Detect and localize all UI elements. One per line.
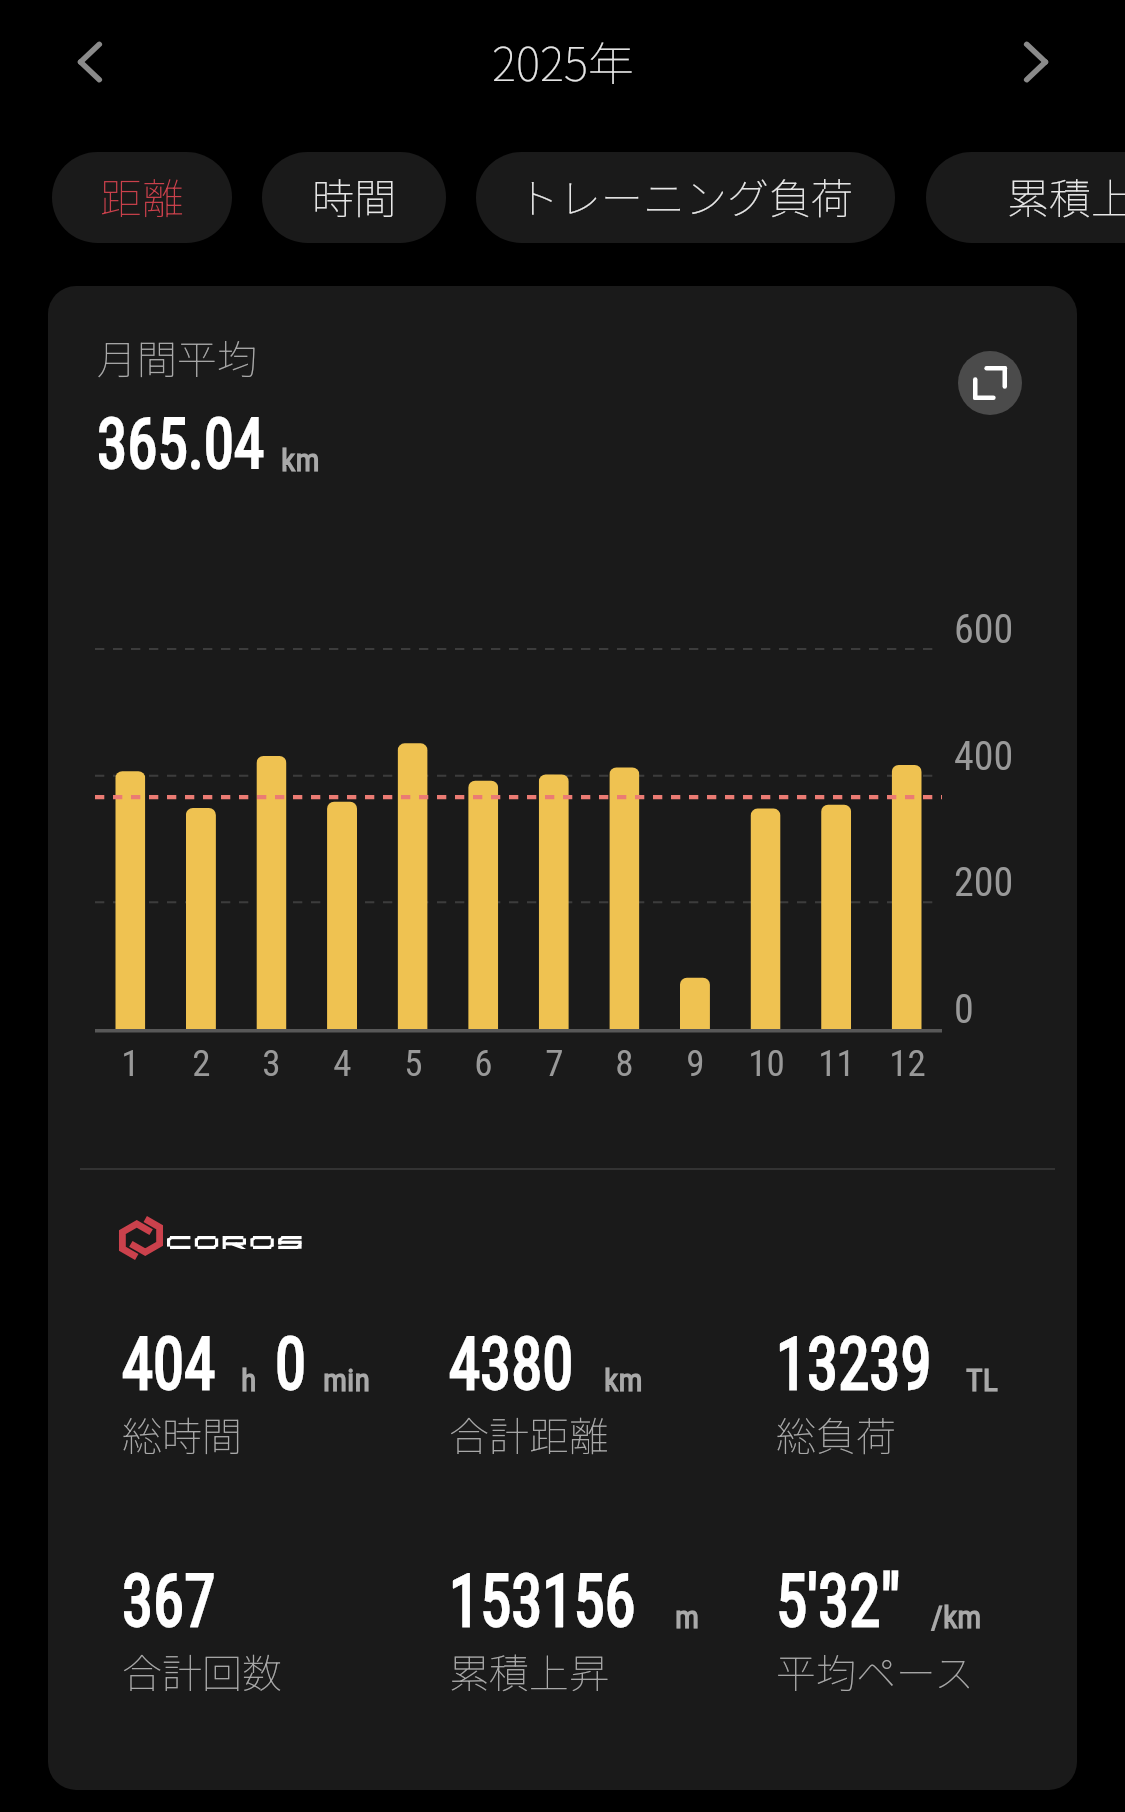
- staticText: 13239: [776, 1322, 932, 1406]
- staticText: /km: [931, 1598, 982, 1636]
- staticText: 時間: [312, 165, 397, 226]
- staticText: 5'32": [776, 1559, 901, 1643]
- button[interactable]: トレーニング負荷: [476, 152, 895, 243]
- staticText: 総時間: [122, 1405, 242, 1463]
- staticText: 12: [889, 1042, 926, 1085]
- staticText: 4380: [449, 1322, 574, 1406]
- staticText: 400: [954, 733, 1014, 780]
- staticText: 404: [122, 1322, 216, 1406]
- staticText: 365.04: [97, 403, 265, 485]
- staticText: 367: [122, 1559, 216, 1643]
- staticText: トレーニング負荷: [517, 165, 854, 226]
- staticText: 8: [615, 1042, 634, 1085]
- button[interactable]: Expand chart: [958, 351, 1022, 415]
- staticText: 9: [686, 1042, 705, 1085]
- staticText: 総負荷: [776, 1405, 896, 1463]
- staticText: 200: [954, 859, 1014, 906]
- staticText: 600: [954, 606, 1014, 653]
- staticText: 4: [333, 1042, 352, 1085]
- button[interactable]: 累積上昇: [926, 152, 1125, 243]
- staticText: 0: [275, 1322, 306, 1406]
- staticText: 距離: [100, 165, 185, 226]
- staticText: 平均ペース: [776, 1642, 974, 1700]
- staticText: 6: [474, 1042, 493, 1085]
- staticText: m: [675, 1598, 700, 1636]
- staticText: h: [241, 1361, 257, 1399]
- staticText: 7: [545, 1042, 564, 1085]
- staticText: 合計回数: [122, 1642, 282, 1700]
- staticText: 合計距離: [449, 1405, 609, 1463]
- staticText: 月間平均: [97, 328, 257, 386]
- staticText: 2: [192, 1042, 211, 1085]
- staticText: 2025年: [492, 28, 634, 95]
- staticText: min: [323, 1361, 370, 1399]
- staticText: 1: [121, 1042, 140, 1085]
- button[interactable]: 時間: [262, 152, 446, 243]
- staticText: 11: [818, 1042, 855, 1085]
- button[interactable]: 距離: [52, 152, 232, 243]
- staticText: 5: [404, 1042, 423, 1085]
- staticText: km: [604, 1361, 643, 1399]
- staticText: 0: [954, 986, 974, 1033]
- staticText: TL: [966, 1361, 998, 1399]
- staticText: 3: [262, 1042, 281, 1085]
- staticText: 累積上昇: [1007, 165, 1125, 226]
- staticText: 累積上昇: [449, 1642, 609, 1700]
- staticText: 10: [748, 1042, 785, 1085]
- button[interactable]: Previous year: [47, 18, 135, 106]
- button[interactable]: Next year: [991, 18, 1079, 106]
- staticText: 153156: [449, 1559, 636, 1643]
- staticText: km: [281, 441, 320, 479]
